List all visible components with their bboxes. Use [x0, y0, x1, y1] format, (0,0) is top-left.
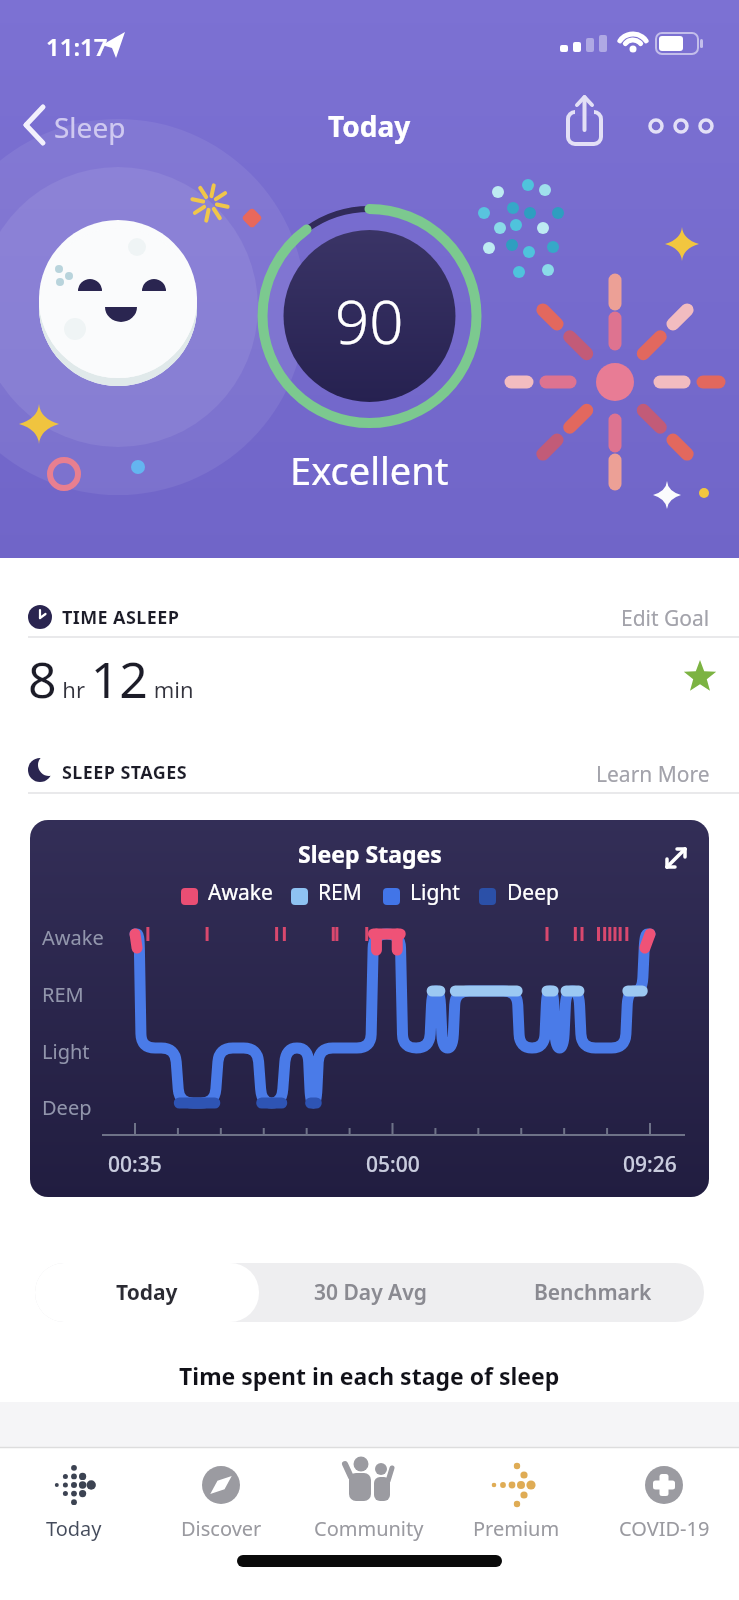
staticText: Deep — [507, 878, 559, 907]
button[interactable]: 30 Day Avg — [259, 1263, 481, 1322]
button[interactable]: Learn More — [596, 760, 710, 789]
staticText: 05:00 — [366, 1150, 420, 1179]
staticText: Sleep — [54, 108, 126, 146]
staticText: Today — [116, 1278, 178, 1307]
staticText: Premium — [473, 1515, 560, 1542]
staticText: Learn More — [596, 760, 710, 789]
button[interactable]: Today — [4, 1511, 144, 1545]
button[interactable]: Edit Goal — [621, 604, 710, 633]
staticText: 30 Day Avg — [314, 1278, 427, 1307]
staticText: Today — [46, 1515, 102, 1542]
staticText: Excellent — [290, 444, 449, 496]
button[interactable] — [18, 100, 148, 150]
button[interactable] — [560, 95, 610, 150]
staticText: 09:26 — [623, 1150, 677, 1179]
staticText: Deep — [42, 1094, 92, 1121]
staticText: Awake — [208, 878, 273, 907]
staticText: Awake — [42, 924, 104, 951]
staticText: Discover — [181, 1515, 262, 1542]
button[interactable]: COVID-19 — [594, 1511, 734, 1545]
staticText: 00:35 — [108, 1150, 162, 1179]
staticText: 90 — [335, 280, 404, 362]
staticText: TIME ASLEEP — [62, 605, 180, 630]
staticText: COVID-19 — [619, 1515, 710, 1542]
button[interactable] — [656, 838, 696, 878]
staticText: Light — [42, 1038, 90, 1065]
staticText: Light — [410, 878, 460, 907]
staticText: Benchmark — [534, 1278, 652, 1307]
button[interactable]: Discover — [151, 1511, 291, 1545]
button[interactable]: Premium — [446, 1511, 586, 1545]
staticText: REM — [42, 981, 84, 1008]
button[interactable]: Today — [35, 1263, 259, 1322]
staticText: SLEEP STAGES — [62, 760, 187, 785]
button[interactable] — [642, 105, 722, 145]
staticText: Sleep Stages — [298, 838, 442, 869]
staticText: REM — [318, 878, 362, 907]
staticText: Community — [314, 1515, 424, 1542]
staticText: Time spent in each stage of sleep — [179, 1360, 560, 1391]
staticText: Edit Goal — [621, 604, 710, 633]
button[interactable]: Benchmark — [481, 1263, 704, 1322]
staticText: 11:17 — [46, 30, 108, 63]
staticText: Today — [328, 107, 411, 145]
button[interactable]: Community — [299, 1511, 439, 1545]
staticText: 8 hr 12 min — [28, 645, 194, 713]
